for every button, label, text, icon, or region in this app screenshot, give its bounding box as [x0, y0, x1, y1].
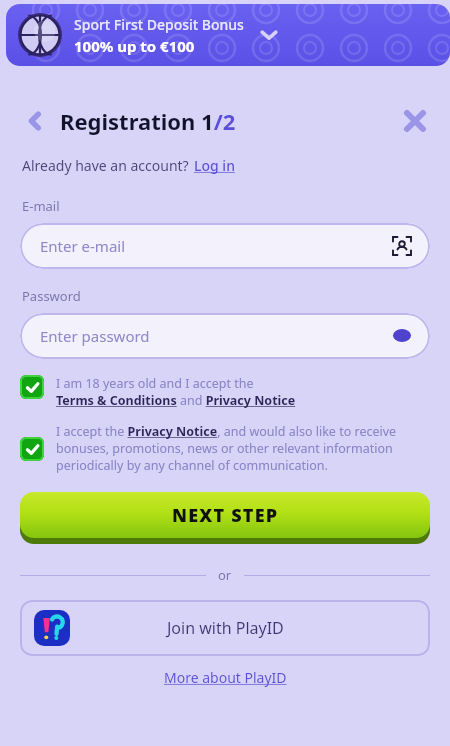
staticText: More about PlayID: [164, 668, 287, 687]
button[interactable]: Scan ID: [388, 232, 416, 260]
staticText: Enter e-mail: [40, 236, 126, 256]
staticText: NEXT STEP: [172, 503, 279, 528]
button[interactable]: Checked: [20, 375, 44, 399]
staticText: Sport First Deposit Bonus: [74, 15, 244, 34]
button[interactable]: Expand bonus details: [252, 18, 286, 52]
button[interactable]: Back: [14, 100, 56, 142]
staticText: Password: [22, 287, 81, 305]
button[interactable]: Enter e-mail: [20, 223, 430, 269]
button[interactable]: More about PlayID: [164, 668, 287, 687]
staticText: Log in: [194, 156, 235, 175]
staticText: I am 18 years old and I accept the Terms…: [56, 375, 296, 409]
button[interactable]: Sport First Deposit Bonus: [6, 4, 450, 66]
staticText: E-mail: [22, 197, 60, 215]
staticText: Join with PlayID: [167, 617, 284, 639]
staticText: I accept the Privacy Notice, and would a…: [56, 423, 430, 474]
button[interactable]: Enter password: [20, 313, 430, 359]
button[interactable]: NEXT STEP: [20, 492, 430, 544]
button[interactable]: Log in: [194, 156, 235, 175]
button[interactable]: Checked: [20, 375, 430, 409]
staticText: 100% up to €100: [74, 36, 195, 56]
button[interactable]: Checked: [20, 437, 44, 461]
button[interactable]: Checked: [20, 423, 430, 474]
staticText: Registration 1/2: [60, 106, 236, 136]
staticText: or: [218, 566, 232, 584]
button[interactable]: Close: [394, 100, 436, 142]
button[interactable]: Join with PlayID: [20, 600, 430, 656]
staticText: Already have an account?: [22, 156, 189, 175]
staticText: Enter password: [40, 326, 150, 346]
button[interactable]: Show password: [388, 322, 416, 350]
